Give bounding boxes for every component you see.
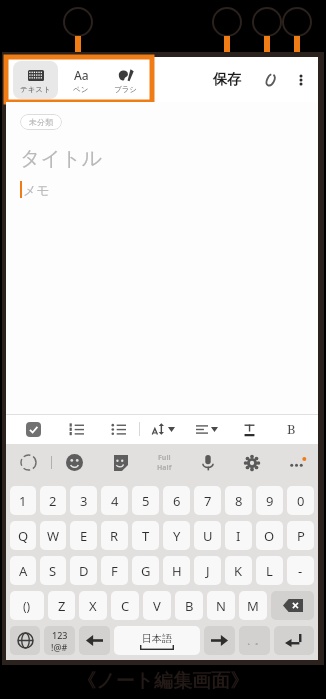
staticText: 3 xyxy=(80,492,88,510)
button[interactable]: N xyxy=(207,591,235,620)
button[interactable]: Full Half width xyxy=(142,444,186,481)
button[interactable]: Font size xyxy=(140,414,186,444)
staticText: () xyxy=(23,598,31,614)
staticText: 7 xyxy=(204,492,212,510)
button[interactable]: Stickers xyxy=(97,444,142,481)
button[interactable]: W xyxy=(40,521,66,550)
staticText: F xyxy=(111,562,118,580)
button[interactable]: G xyxy=(132,556,159,585)
staticText: 《ノート編集画面》 xyxy=(0,669,326,693)
button[interactable]: Attach xyxy=(257,67,283,93)
button[interactable]: F xyxy=(101,556,128,585)
button[interactable]: Bulleted list xyxy=(97,414,139,444)
button[interactable]: Q xyxy=(10,521,36,550)
staticText: U xyxy=(203,527,213,545)
button[interactable]: Translate xyxy=(6,444,51,481)
staticText: Full xyxy=(158,453,171,463)
button[interactable]: I xyxy=(225,521,252,550)
button[interactable]: R xyxy=(101,521,128,550)
button[interactable]: M xyxy=(239,591,267,620)
staticText: T xyxy=(142,527,150,545)
button[interactable]: Z xyxy=(48,591,75,620)
button[interactable]: 8 xyxy=(225,486,252,515)
button[interactable]: C xyxy=(111,591,139,620)
button[interactable]: U xyxy=(194,521,221,550)
staticText: 1 xyxy=(19,492,27,510)
button[interactable]: - xyxy=(287,556,314,585)
staticText: B xyxy=(287,420,296,438)
staticText: 未分類 xyxy=(29,117,53,127)
button[interactable]: Aa xyxy=(58,61,103,99)
button[interactable]: Left xyxy=(79,626,110,655)
staticText: Y xyxy=(173,527,181,545)
button[interactable]: () xyxy=(10,591,44,620)
staticText: S xyxy=(49,562,57,580)
staticText: N xyxy=(216,597,226,615)
button[interactable]: 5 xyxy=(132,486,159,515)
button[interactable]: Emoji xyxy=(52,444,97,481)
button[interactable]: Settings xyxy=(230,444,274,481)
button[interactable]: Punctuation xyxy=(239,626,270,655)
button[interactable]: 7 xyxy=(194,486,221,515)
staticText: D xyxy=(79,562,89,580)
button[interactable]: P xyxy=(287,521,314,550)
button[interactable]: 4 xyxy=(101,486,128,515)
button[interactable]: Space xyxy=(114,626,200,655)
button[interactable]: V xyxy=(143,591,171,620)
staticText: ペン xyxy=(73,85,89,94)
staticText: O xyxy=(264,527,275,545)
staticText: Q xyxy=(18,527,29,545)
button[interactable]: T xyxy=(132,521,159,550)
button[interactable]: More xyxy=(274,444,318,481)
staticText: 0 xyxy=(297,492,305,510)
button[interactable]: 9 xyxy=(256,486,283,515)
button[interactable]: D xyxy=(70,556,97,585)
staticText: Half xyxy=(157,463,172,473)
staticText: 4 xyxy=(111,492,119,510)
button[interactable]: S xyxy=(40,556,66,585)
button[interactable]: 未分類 xyxy=(20,114,62,130)
button[interactable]: L xyxy=(256,556,283,585)
button[interactable]: Right xyxy=(204,626,235,655)
button[interactable]: B xyxy=(175,591,203,620)
button[interactable]: Alignment xyxy=(186,414,228,444)
button[interactable]: H xyxy=(163,556,190,585)
button[interactable]: Y xyxy=(163,521,190,550)
button[interactable]: ブラシ xyxy=(103,61,148,99)
button[interactable]: Enter xyxy=(274,626,314,655)
staticText: X xyxy=(89,597,97,615)
button[interactable]: Numbered list xyxy=(55,414,97,444)
button[interactable]: E xyxy=(70,521,97,550)
button[interactable]: 1 xyxy=(10,486,36,515)
button[interactable]: Symbols xyxy=(44,626,75,655)
staticText: G xyxy=(141,562,151,580)
staticText: A xyxy=(19,562,28,580)
button[interactable]: 保存 xyxy=(207,65,247,95)
button[interactable]: 2 xyxy=(40,486,66,515)
button[interactable]: O xyxy=(256,521,283,550)
staticText: Aa xyxy=(74,67,89,83)
button[interactable]: Bold xyxy=(270,414,312,444)
button[interactable]: 6 xyxy=(163,486,190,515)
button[interactable]: X xyxy=(79,591,107,620)
button[interactable]: K xyxy=(225,556,252,585)
button[interactable]: Checklist xyxy=(12,414,55,444)
button[interactable]: Backspace xyxy=(271,591,314,620)
button[interactable]: テキスト xyxy=(13,61,58,99)
button[interactable]: 0 xyxy=(287,486,314,515)
button[interactable]: 3 xyxy=(70,486,97,515)
button[interactable]: Language xyxy=(10,626,40,655)
staticText: 2 xyxy=(49,492,57,510)
button[interactable]: J xyxy=(194,556,221,585)
button[interactable]: Underline xyxy=(228,414,270,444)
button[interactable]: Voice input xyxy=(186,444,230,481)
staticText: M xyxy=(247,597,259,615)
staticText: ブラシ xyxy=(114,85,138,94)
button[interactable]: More options xyxy=(289,68,313,92)
staticText: 日本語 xyxy=(142,632,172,645)
staticText: 保存 xyxy=(213,71,241,89)
staticText: タイトル xyxy=(20,146,102,171)
staticText: J xyxy=(206,562,210,580)
staticText: 123 xyxy=(52,629,68,641)
button[interactable]: A xyxy=(10,556,36,585)
